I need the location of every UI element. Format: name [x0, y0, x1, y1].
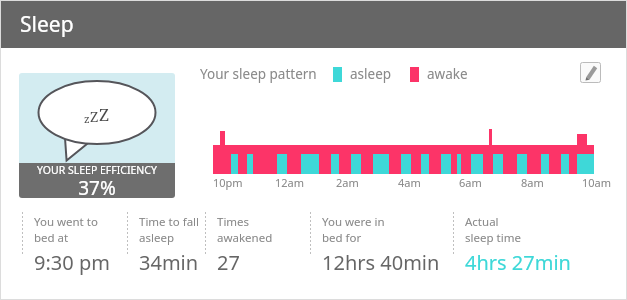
staticText: asleep: [139, 230, 174, 246]
staticText: 37%: [19, 175, 175, 196]
staticText: asleep: [350, 65, 392, 83]
staticText: 6am: [459, 175, 482, 190]
staticText: Z: [90, 107, 99, 126]
staticText: You went to: [34, 214, 98, 230]
staticText: z: [84, 111, 90, 126]
button[interactable]: Actual: [454, 208, 593, 278]
staticText: 10am: [582, 175, 612, 190]
staticText: 27: [217, 249, 240, 276]
staticText: Z: [99, 103, 110, 126]
staticText: 4hrs 27min: [465, 249, 571, 276]
staticText: 34min: [139, 249, 199, 276]
staticText: 9:30 pm: [34, 249, 110, 276]
staticText: 2am: [336, 175, 359, 190]
staticText: 12am: [275, 175, 305, 190]
button[interactable]: z: [19, 73, 175, 198]
staticText: 10pm: [213, 175, 243, 190]
staticText: Your sleep pattern: [200, 65, 317, 83]
button[interactable]: Times: [206, 208, 310, 278]
staticText: 4am: [398, 175, 421, 190]
button[interactable]: You went to: [23, 208, 127, 278]
staticText: 12hrs 40min: [322, 249, 440, 276]
staticText: You were in: [322, 214, 385, 230]
staticText: Actual: [465, 214, 499, 230]
staticText: bed for: [322, 230, 362, 246]
staticText: awakened: [217, 230, 273, 246]
button[interactable]: You were in: [311, 208, 453, 278]
staticText: Times: [217, 214, 250, 230]
button[interactable]: Edit: [580, 62, 601, 83]
staticText: bed at: [34, 230, 69, 246]
staticText: YOUR SLEEP EFFICIENCY: [19, 163, 175, 177]
button[interactable]: Time to fall: [128, 208, 205, 278]
staticText: awake: [427, 65, 468, 83]
staticText: sleep time: [465, 230, 521, 246]
staticText: 8am: [521, 175, 544, 190]
staticText: Time to fall: [139, 214, 200, 230]
staticText: Sleep: [20, 10, 74, 39]
